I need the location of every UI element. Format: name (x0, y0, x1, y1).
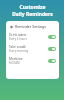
staticText: 8:00 AM (9, 61, 20, 65)
staticText: Take a walk (9, 45, 27, 49)
button[interactable]: Back (9, 24, 14, 29)
staticText: Every morning (9, 49, 29, 53)
staticText: Medicine (9, 57, 23, 61)
staticText: Every 2 hours (9, 37, 27, 41)
button[interactable]: Take a walk (9, 45, 56, 53)
button[interactable]: Medicine (9, 57, 56, 65)
staticText: Customize (19, 4, 46, 11)
button[interactable]: Drink water (9, 33, 56, 41)
staticText: Daily Reminders (12, 11, 53, 18)
staticText: Drink water (9, 33, 27, 37)
staticText: Reminder Settings (15, 24, 46, 29)
